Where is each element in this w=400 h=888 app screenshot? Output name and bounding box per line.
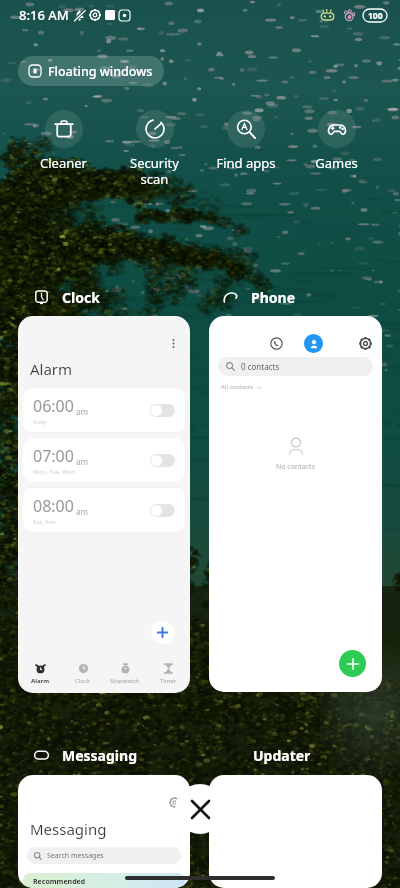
button[interactable]: 07:00 (23, 438, 185, 482)
button[interactable]: Recent calls (209, 316, 382, 692)
button[interactable]: Clock (63, 663, 103, 685)
button[interactable]: Contacts (304, 334, 323, 353)
staticText: All contacts (221, 383, 254, 391)
staticText: Timer (160, 677, 177, 685)
staticText: am (76, 456, 88, 467)
button[interactable]: 06:00 (23, 388, 185, 432)
button[interactable]: Games (292, 110, 381, 172)
staticText: 8:16 AM (19, 6, 69, 24)
button[interactable]: More options (165, 335, 181, 351)
button[interactable]: Clock (34, 286, 100, 308)
staticText: Security scan (130, 154, 179, 187)
button[interactable]: Alarm (20, 663, 60, 685)
staticText: Messaging (62, 746, 137, 765)
button[interactable]: Settings (354, 332, 376, 354)
button[interactable]: Toggle alarm (150, 404, 175, 417)
staticText: 07:00 (33, 445, 74, 467)
staticText: am (76, 406, 88, 417)
staticText: No contacts (276, 462, 315, 472)
staticText: Stopwatch (110, 677, 140, 685)
button[interactable]: Add alarm (151, 621, 174, 644)
button[interactable]: Toggle alarm (150, 454, 175, 467)
button[interactable]: Search messages (27, 847, 181, 864)
staticText: Messaging (30, 819, 107, 839)
button[interactable]: Add contact (339, 650, 366, 677)
staticText: Clock (62, 288, 100, 307)
button[interactable]: Phone (223, 286, 296, 308)
button[interactable]: Floating windows (18, 56, 164, 86)
staticText: Updater (253, 746, 311, 765)
staticText: 06:00 (33, 395, 74, 417)
button[interactable]: Toggle alarm (150, 504, 175, 517)
button[interactable]: Stopwatch (105, 663, 145, 685)
staticText: 08:00 (33, 495, 74, 517)
other: Messaging settings (169, 797, 180, 808)
button[interactable]: All contacts (221, 383, 262, 391)
button[interactable]: Find apps (201, 110, 290, 172)
button[interactable]: Cleaner (19, 110, 108, 172)
button[interactable]: Close all (175, 784, 225, 834)
button[interactable]: 08:00 (23, 488, 185, 532)
button[interactable]: More options (18, 316, 190, 693)
button[interactable]: Timer (148, 663, 188, 685)
button[interactable]: 0 contacts (218, 357, 373, 376)
staticText: Find apps (216, 154, 276, 172)
button[interactable] (209, 775, 382, 888)
button[interactable]: Recent calls (265, 332, 287, 354)
staticText: am (76, 506, 88, 517)
staticText: Phone (251, 288, 296, 307)
staticText: Sat, Sun (33, 518, 56, 526)
staticText: Alarm (30, 359, 73, 379)
staticText: Search messages (47, 851, 104, 861)
staticText: Cleaner (40, 154, 87, 172)
staticText: Mon, Tue, Wed (33, 468, 75, 476)
staticText: 0 contacts (241, 361, 280, 372)
staticText: Recommended (33, 877, 86, 887)
button[interactable]: Messaging (34, 744, 137, 766)
staticText: Daily (33, 418, 47, 426)
button[interactable]: Messaging settings (18, 775, 190, 888)
staticText: Games (315, 154, 358, 172)
staticText: Clock (75, 677, 91, 685)
staticText: 100 (368, 10, 383, 22)
staticText: Alarm (31, 677, 50, 685)
staticText: Floating windows (48, 63, 153, 80)
button[interactable]: Security scan (110, 110, 199, 187)
button[interactable]: Updater (253, 744, 311, 766)
